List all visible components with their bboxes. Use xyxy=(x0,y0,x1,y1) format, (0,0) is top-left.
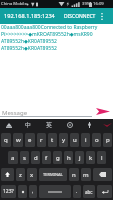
button[interactable]: DISCONNECT xyxy=(62,8,98,24)
staticText: u xyxy=(73,136,77,144)
staticText: e xyxy=(28,136,32,144)
button[interactable]: j xyxy=(75,151,84,164)
staticText: 中 xyxy=(25,121,31,129)
button[interactable]: a xyxy=(8,151,18,164)
staticText: j xyxy=(79,154,81,162)
staticText: r xyxy=(40,136,43,144)
staticText: m xyxy=(83,171,89,179)
staticText: AT89552h◆KR0AT89552 xyxy=(1,38,113,45)
button[interactable]: m xyxy=(81,168,91,181)
button[interactable]: More options xyxy=(96,8,108,24)
button[interactable]: t xyxy=(48,133,57,147)
staticText: g xyxy=(56,154,60,162)
button[interactable]: 123? xyxy=(1,185,16,198)
button[interactable]: TERMINAL xyxy=(39,168,67,181)
button[interactable]: y xyxy=(59,133,68,147)
button[interactable]: s xyxy=(20,151,29,164)
button[interactable]: Chinese xyxy=(21,119,35,131)
staticText: abc xyxy=(85,189,93,195)
button[interactable]: d xyxy=(31,151,40,164)
staticText: y xyxy=(62,136,66,144)
button[interactable]: o xyxy=(92,133,101,147)
button[interactable]: . xyxy=(73,185,81,198)
button[interactable]: i xyxy=(81,133,90,147)
button[interactable]: Enter xyxy=(97,185,112,198)
staticText: TERMINAL xyxy=(43,172,63,177)
button[interactable]: h xyxy=(64,151,73,164)
staticText: x xyxy=(30,171,34,179)
button[interactable]: k xyxy=(86,151,95,164)
staticText: i xyxy=(85,136,87,144)
button[interactable]: x xyxy=(27,168,37,181)
button[interactable]: , xyxy=(29,185,37,198)
button[interactable]: Space xyxy=(39,185,71,198)
staticText: p xyxy=(106,136,110,144)
staticText: , xyxy=(32,188,34,195)
button[interactable]: Send xyxy=(93,104,112,118)
staticText: t xyxy=(51,136,54,144)
button[interactable]: Keyboard settings xyxy=(2,119,16,131)
button[interactable]: abc xyxy=(83,185,95,198)
staticText: k xyxy=(89,154,93,162)
button[interactable]: l xyxy=(97,151,106,164)
button[interactable]: English xyxy=(42,119,56,131)
staticText: 英 xyxy=(46,121,52,129)
button[interactable]: Theme xyxy=(100,119,113,131)
button[interactable]: w xyxy=(13,133,23,147)
button[interactable]: Emoji xyxy=(18,185,27,198)
button[interactable]: f xyxy=(42,151,51,164)
button[interactable]: Shift xyxy=(1,168,14,181)
button[interactable]: Voice input xyxy=(63,119,77,131)
staticText: Pi>>>>>>>>◆mKROAT89552h◆msKR90 xyxy=(1,31,113,38)
staticText: 00aaa800aaa800Connected to Raspberry xyxy=(1,24,113,31)
staticText: f xyxy=(45,154,48,162)
staticText: 123? xyxy=(3,188,14,195)
staticText: . xyxy=(76,188,78,195)
staticText: w xyxy=(16,136,21,144)
button[interactable]: r xyxy=(37,133,46,147)
staticText: h xyxy=(67,154,71,162)
staticText: z xyxy=(19,171,22,179)
button[interactable]: z xyxy=(16,168,25,181)
staticText: q xyxy=(4,136,8,144)
staticText: s xyxy=(23,154,26,162)
button[interactable]: e xyxy=(25,133,35,147)
staticText: 16:09 xyxy=(93,1,104,7)
staticText: 39% xyxy=(82,1,91,7)
staticText: AT89552h◆KR0AT89552 xyxy=(1,45,113,52)
staticText: n xyxy=(72,171,76,179)
staticText: o xyxy=(95,136,99,144)
button[interactable]: q xyxy=(1,133,11,147)
button[interactable]: n xyxy=(69,168,79,181)
staticText: DISCONNECT xyxy=(64,13,96,20)
staticText: a xyxy=(11,154,15,162)
staticText: Message xyxy=(2,109,28,117)
button[interactable]: u xyxy=(70,133,79,147)
staticText: l xyxy=(101,154,103,162)
button[interactable]: Settings xyxy=(82,119,96,131)
staticText: d xyxy=(34,154,38,162)
button[interactable]: Backspace xyxy=(93,168,112,181)
staticText: 192.168.1.185:1234 xyxy=(4,12,55,20)
button[interactable]: g xyxy=(53,151,62,164)
button[interactable]: p xyxy=(103,133,112,147)
staticText: China Mobile xyxy=(1,1,27,7)
